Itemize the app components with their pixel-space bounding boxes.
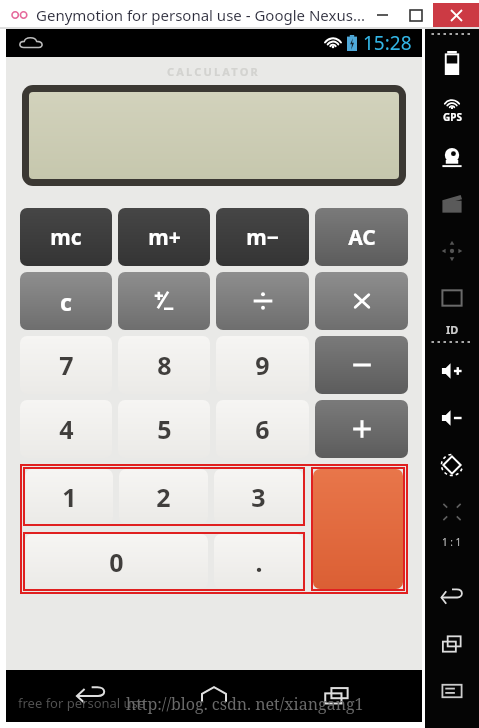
staticText: http://blog. csdn. net/xiangang1 <box>126 693 364 715</box>
button[interactable]: 0 <box>25 534 208 589</box>
button[interactable]: Equals <box>313 469 403 589</box>
button[interactable]: Maximize <box>399 4 433 26</box>
button[interactable]: . <box>214 534 303 589</box>
button[interactable]: 8 <box>118 336 210 394</box>
button[interactable]: AC <box>315 208 408 266</box>
button[interactable]: Back <box>425 573 479 620</box>
staticText: 5 <box>157 412 172 446</box>
staticText: 4 <box>59 412 74 446</box>
button[interactable]: Pad <box>425 227 479 274</box>
staticText: Genymotion for personal use - Google Nex… <box>36 5 365 25</box>
staticText: 9 <box>255 348 270 382</box>
button[interactable]: m− <box>216 208 309 266</box>
button[interactable]: 1 <box>25 469 113 524</box>
button[interactable]: Recents <box>299 674 375 718</box>
button[interactable]: Plus <box>315 400 408 458</box>
staticText: 3 <box>251 480 266 514</box>
button[interactable]: Multiply <box>315 272 408 330</box>
button[interactable]: 6 <box>216 400 309 458</box>
staticText: 1 <box>62 480 77 514</box>
button[interactable]: 7 <box>20 336 112 394</box>
staticText: AC <box>348 223 376 252</box>
button[interactable]: Minus <box>315 336 408 394</box>
button[interactable]: Record <box>425 180 479 227</box>
staticText: 7 <box>59 348 74 382</box>
staticText: CALCULATOR <box>167 64 261 79</box>
button[interactable]: m+ <box>118 208 210 266</box>
button[interactable]: Back <box>53 674 129 718</box>
button[interactable]: Volume up <box>425 347 479 394</box>
button[interactable]: Scale 1:1 <box>425 488 479 535</box>
button[interactable]: 4 <box>20 400 112 458</box>
staticText: 2 <box>156 480 171 514</box>
staticText: 15:28 <box>363 30 412 56</box>
button[interactable]: Home <box>176 674 252 718</box>
staticText: 0 <box>109 545 124 579</box>
button[interactable]: Close <box>433 3 479 27</box>
button[interactable]: Divide <box>216 272 309 330</box>
button[interactable]: Recents <box>425 620 479 667</box>
staticText: mc <box>50 223 82 252</box>
staticText: 1 : 1 <box>442 535 462 549</box>
button[interactable]: ID <box>425 274 479 321</box>
staticText: m− <box>246 223 279 252</box>
button[interactable]: mc <box>20 208 112 266</box>
button[interactable]: Volume down <box>425 394 479 441</box>
staticText: free for personal use <box>18 694 146 712</box>
button[interactable]: Rotate <box>425 441 479 488</box>
staticText: 8 <box>157 348 172 382</box>
button[interactable]: 5 <box>118 400 210 458</box>
button[interactable]: Menu <box>425 667 479 714</box>
staticText: c <box>60 286 72 317</box>
button[interactable]: 3 <box>214 469 303 524</box>
button[interactable]: 2 <box>119 469 208 524</box>
button[interactable]: GPS <box>425 86 479 133</box>
staticText: GPS <box>443 110 462 124</box>
staticText: . <box>255 545 263 579</box>
staticText: m+ <box>148 223 181 252</box>
staticText: 6 <box>255 412 270 446</box>
button[interactable]: Camera <box>425 133 479 180</box>
button[interactable]: c <box>20 272 112 330</box>
staticText: ID <box>446 322 459 337</box>
button[interactable]: Minimize <box>365 4 399 26</box>
button[interactable]: Plus minus <box>118 272 210 330</box>
button[interactable]: 9 <box>216 336 309 394</box>
button[interactable]: Battery <box>425 39 479 86</box>
